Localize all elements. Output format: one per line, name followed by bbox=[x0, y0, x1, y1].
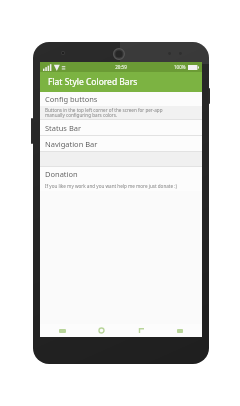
staticText: Config buttons bbox=[45, 94, 98, 104]
button[interactable]: Home bbox=[95, 326, 107, 335]
button[interactable]: Config buttons bbox=[40, 92, 202, 106]
button[interactable]: Buttons in the top left corner of the sc… bbox=[40, 106, 202, 119]
button[interactable]: Navigation Bar bbox=[40, 136, 202, 151]
button[interactable]: Donation bbox=[40, 167, 202, 181]
staticText: 100% bbox=[174, 64, 186, 70]
staticText: Buttons in the top left corner of the sc… bbox=[45, 107, 163, 119]
button[interactable]: Status Bar bbox=[40, 120, 202, 135]
button[interactable]: Menu bbox=[56, 326, 68, 335]
staticText: Navigation Bar bbox=[45, 139, 98, 149]
staticText: Donation bbox=[45, 169, 78, 179]
staticText: 20:59 bbox=[115, 64, 127, 70]
button[interactable]: If you like my work and you want help me… bbox=[40, 181, 202, 191]
button[interactable]: Back bbox=[135, 326, 147, 335]
staticText: Status Bar bbox=[45, 123, 82, 133]
staticText: If you like my work and you want help me… bbox=[45, 183, 177, 189]
button[interactable]: Recent apps bbox=[174, 326, 186, 335]
staticText: Flat Style Colored Bars bbox=[48, 76, 138, 88]
